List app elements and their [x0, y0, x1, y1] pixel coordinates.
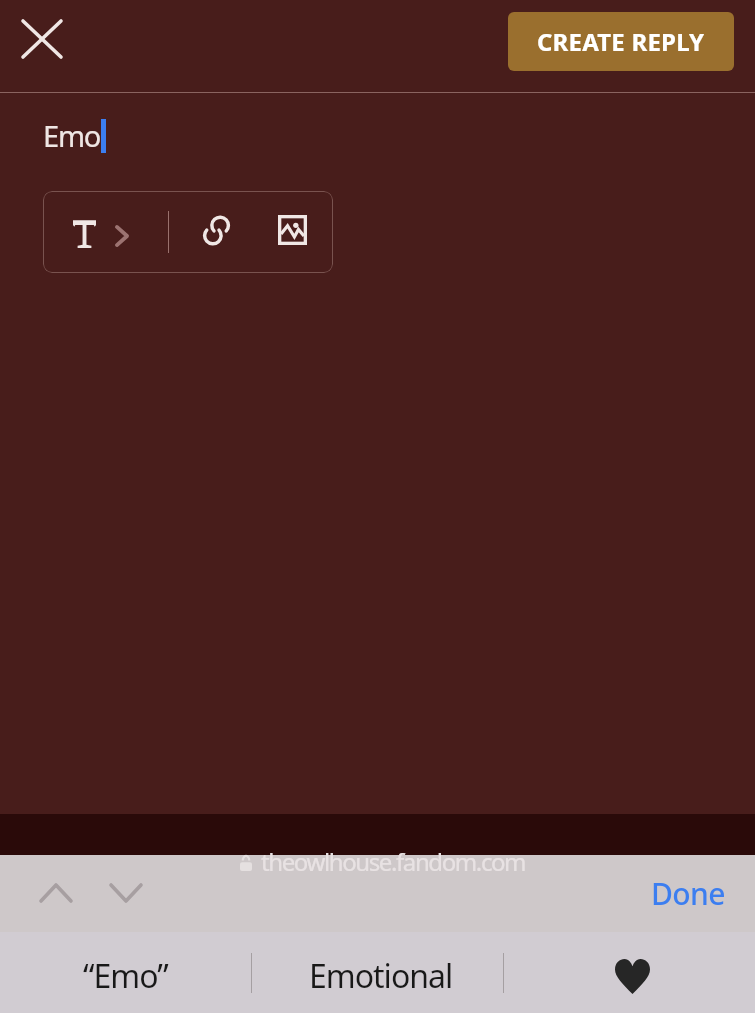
staticText: CREATE REPLY [537, 25, 705, 58]
staticText: Emotional [309, 954, 453, 998]
staticText: Emo [43, 116, 101, 155]
button[interactable]: Emotional [251, 932, 503, 1013]
button[interactable]: Close [6, 6, 78, 72]
button[interactable]: Text style [72, 204, 164, 260]
button[interactable]: Previous field [32, 869, 80, 917]
button[interactable]: CREATE REPLY [508, 12, 734, 71]
button[interactable]: “Emo” [0, 932, 251, 1013]
button[interactable]: Insert image [266, 203, 319, 257]
staticText: Done [651, 873, 725, 914]
button[interactable]: Next field [102, 869, 150, 917]
staticText: theowlhouse.fandom.com [261, 845, 526, 878]
staticText: “Emo” [83, 954, 168, 998]
button[interactable]: Done [640, 865, 735, 921]
button[interactable]: Black heart emoji [503, 932, 755, 1013]
button[interactable]: Insert link [190, 203, 242, 257]
